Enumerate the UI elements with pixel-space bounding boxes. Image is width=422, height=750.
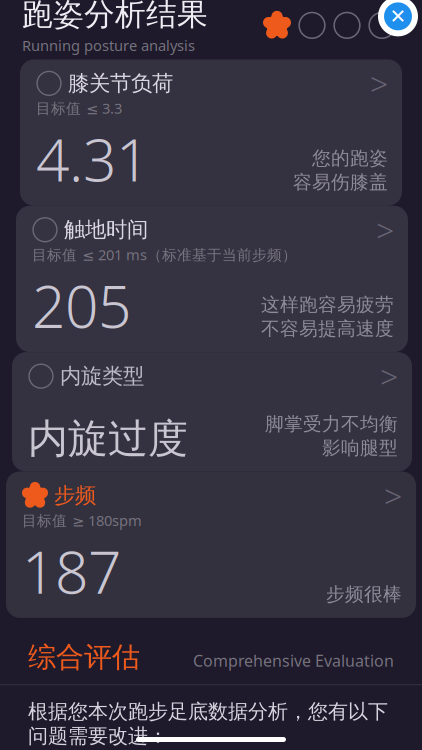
staticText: 内旋过度 — [28, 414, 188, 463]
staticText: 目标值 ≥ 180spm — [22, 510, 142, 530]
staticText: 跑姿分析结果 — [22, 0, 208, 33]
staticText: ✕ — [389, 5, 406, 28]
staticText: > — [376, 208, 394, 251]
staticText: 膝关节负荷 — [68, 70, 173, 96]
staticText: 综合评估 — [28, 640, 140, 674]
staticText: 4.31 — [36, 120, 149, 198]
staticText: 这样跑容易疲劳 — [261, 293, 394, 316]
button[interactable]: 触地时间 — [0, 206, 422, 352]
staticText: 步频很棒 — [326, 583, 402, 606]
staticText: 目标值 ≤ 3.3 — [36, 98, 122, 118]
staticText: 187 — [22, 532, 121, 610]
button[interactable]: 步频 — [0, 471, 422, 618]
staticText: > — [370, 62, 388, 105]
staticText: Running posture analysis — [22, 35, 195, 55]
staticText: 内旋类型 — [60, 363, 144, 389]
button[interactable]: 帮助 — [376, 0, 420, 38]
staticText: Comprehensive Evaluation — [193, 650, 394, 671]
staticText: 步频 — [54, 482, 96, 509]
button[interactable]: 膝关节负荷 — [0, 59, 422, 206]
staticText: 您的跑姿 — [312, 147, 388, 170]
staticText: > — [384, 474, 402, 517]
staticText: 容易伤膝盖 — [293, 171, 388, 194]
staticText: 触地时间 — [64, 217, 148, 243]
staticText: > — [380, 355, 398, 397]
staticText: 脚掌受力不均衡 — [265, 413, 398, 435]
staticText: 不容易提高速度 — [261, 317, 394, 340]
staticText: 影响腿型 — [322, 436, 398, 459]
staticText: 根据您本次跑步足底数据分析，您有以下问题需要改进： — [28, 699, 388, 748]
button[interactable]: 内旋类型 — [0, 352, 422, 471]
staticText: 205 — [32, 266, 131, 344]
staticText: 目标值 ≤ 201 ms（标准基于当前步频） — [32, 245, 297, 264]
